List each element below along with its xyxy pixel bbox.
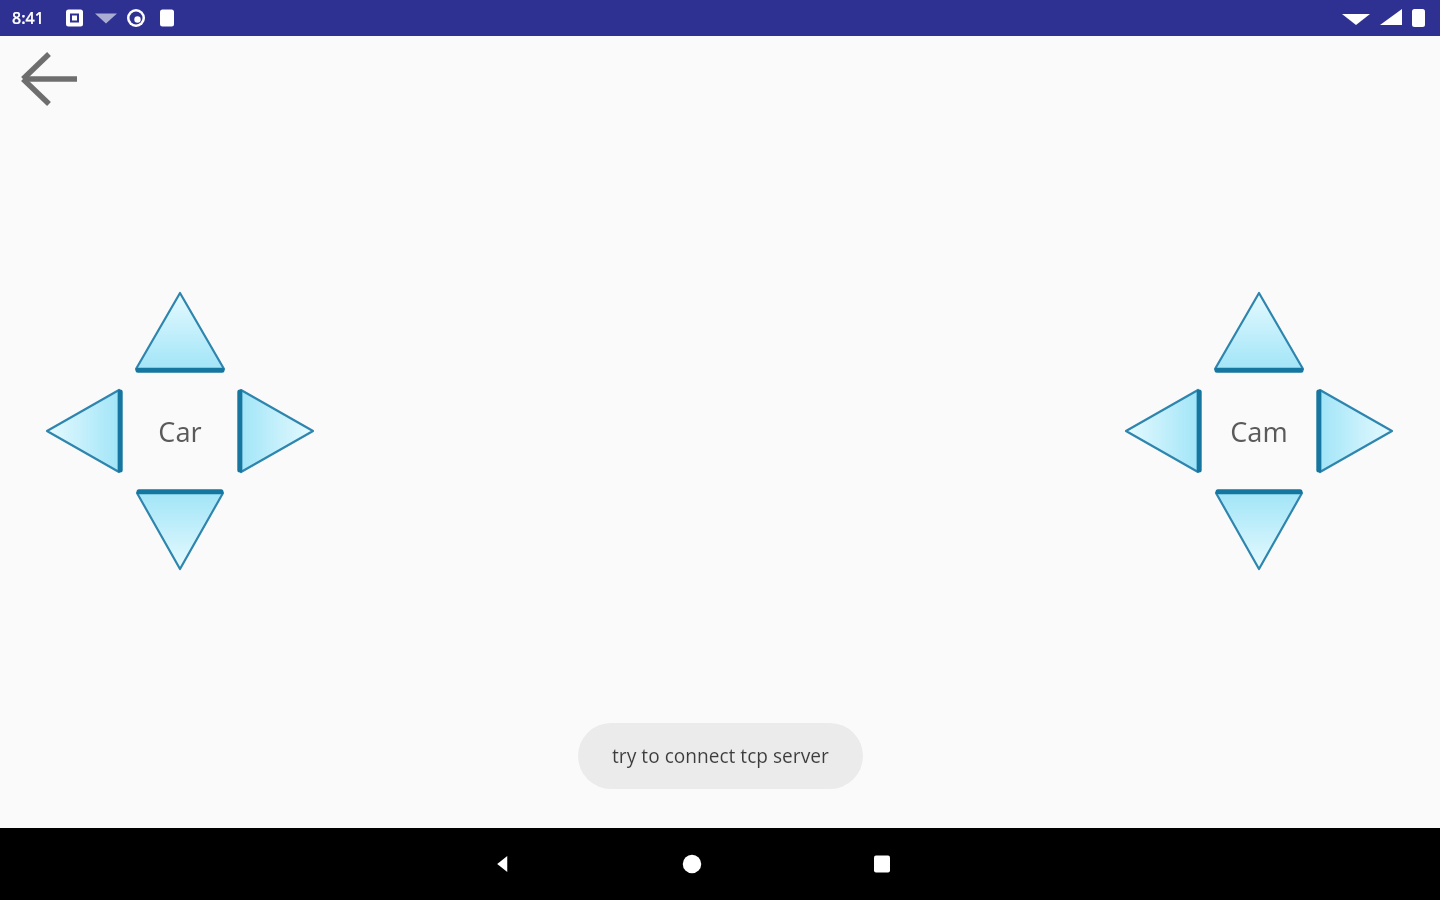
button[interactable]: Cam down	[1213, 490, 1305, 572]
staticText: try to connect tcp server	[612, 743, 829, 769]
button[interactable]: Navigate up	[4, 44, 96, 114]
button[interactable]: Back	[460, 828, 544, 900]
staticText: Cam	[1230, 413, 1288, 450]
button[interactable]: Cam left	[1123, 387, 1201, 475]
button[interactable]: Car right	[238, 387, 316, 475]
button[interactable]: Car left	[44, 387, 122, 475]
staticText: Car	[158, 413, 202, 450]
button[interactable]: Recents	[840, 828, 924, 900]
button[interactable]: Cam right	[1317, 387, 1395, 475]
staticText: 8:41	[12, 7, 44, 29]
button[interactable]: Cam up	[1212, 290, 1306, 372]
button[interactable]: Car down	[134, 490, 226, 572]
button[interactable]: Home	[650, 828, 734, 900]
button[interactable]: Car up	[133, 290, 227, 372]
button[interactable]: try to connect tcp server	[578, 723, 863, 789]
